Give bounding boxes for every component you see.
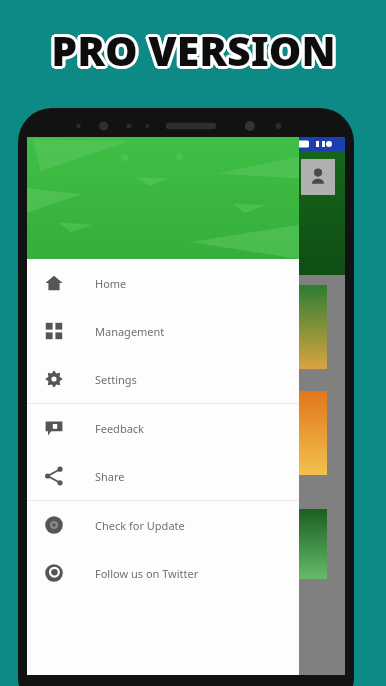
staticText: PRO VERSION [51, 25, 336, 81]
button[interactable]: Follow us on Twitter [27, 549, 299, 597]
staticText: PRO VERSION [51, 19, 336, 75]
staticText: PRO VERSION [52, 20, 337, 76]
staticText: Home [95, 276, 127, 291]
staticText: PRO VERSION [54, 22, 339, 78]
staticText: PRO VERSION [52, 24, 337, 80]
staticText: ... [37, 255, 45, 267]
button[interactable]: Check for Update [27, 501, 299, 549]
staticText: PRO VERSION [53, 24, 338, 80]
staticText: Share [95, 469, 125, 484]
staticText: Management [95, 324, 165, 339]
staticText: PRO VERSION [53, 21, 338, 77]
staticText: PRO VERSION [49, 20, 334, 76]
button[interactable]: Share [27, 452, 299, 500]
staticText: PRO VERSION [53, 20, 338, 76]
staticText: PRO VERSION [49, 21, 334, 77]
button[interactable]: Settings [27, 355, 299, 403]
staticText: Feedback [95, 421, 144, 436]
staticText: PRO VERSION [49, 24, 334, 80]
staticText: PRO VERSION [50, 24, 335, 80]
button[interactable]: Home [27, 259, 299, 307]
staticText: Settings [95, 372, 137, 387]
staticText: Follow us on Twitter [95, 566, 199, 581]
staticText: PRO VERSION [49, 23, 334, 79]
staticText: PRO VERSION [48, 22, 333, 78]
staticText: Check for Update [95, 518, 185, 533]
staticText: PRO VERSION [50, 20, 335, 76]
button[interactable]: Feedback [27, 404, 299, 452]
button[interactable]: Management [27, 307, 299, 355]
staticText: PRO VERSION [51, 22, 336, 78]
staticText: PRO VERSION [53, 23, 338, 79]
